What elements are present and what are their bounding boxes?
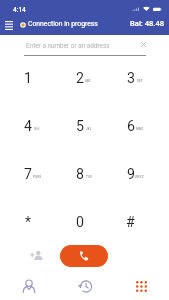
button[interactable]: 0 [54,198,105,246]
staticText: 4:14 [13,6,26,14]
staticText: * [25,214,32,231]
button[interactable]: 7 [2,150,54,198]
button[interactable]: Clear [138,39,149,50]
staticText: JKL [86,127,92,131]
button[interactable]: Add contact [27,247,46,263]
button[interactable]: 5 [54,102,105,150]
staticText: 5 [76,118,84,135]
button[interactable]: 9 [105,150,156,198]
staticText: 4 [24,118,32,135]
button[interactable]: Menu [1,16,17,34]
staticText: 1 [24,70,32,87]
staticText: 7 [24,166,32,183]
button[interactable]: 1 [2,54,54,102]
staticText: 8 [76,166,84,183]
button[interactable]: 4 [2,102,54,150]
staticText: TUV [86,175,92,179]
button[interactable]: 8 [54,150,105,198]
staticText: 9 [127,166,135,183]
staticText: GHI [34,127,40,131]
staticText: Bal: 48.48 [130,19,165,28]
staticText: 3 [127,70,135,87]
button[interactable]: 6 [105,102,156,150]
staticText: DEF [137,79,143,83]
staticText: MNO [136,127,144,131]
button[interactable]: Contacts [0,271,57,300]
staticText: 0 [76,214,84,231]
button[interactable]: Enter a number or an address [0,35,169,56]
button[interactable]: Call [60,245,108,267]
staticText: 2 [76,70,84,87]
staticText: 6 [127,118,135,135]
button[interactable]: # [105,198,156,246]
staticText: # [126,214,135,231]
staticText: WXYZ [135,175,144,179]
staticText: ABC [85,79,92,83]
staticText: PQRS [33,175,42,179]
button[interactable]: 3 [105,54,156,102]
button[interactable]: 2 [54,54,105,102]
button[interactable]: Keypad [113,271,169,300]
staticText: Connection in progress [28,20,98,28]
staticText: Enter a number or an address [26,42,110,50]
button[interactable]: * [2,198,54,246]
button[interactable]: Recents [57,271,113,300]
